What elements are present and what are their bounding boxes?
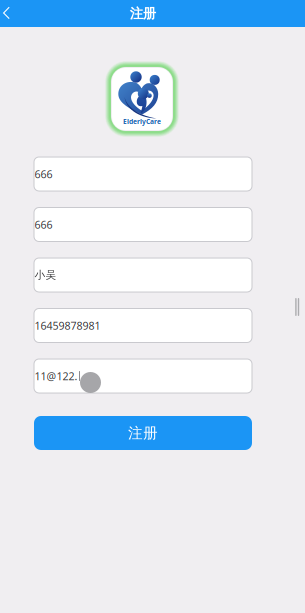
button[interactable]: 11@122. bbox=[34, 359, 252, 393]
staticText: 666 bbox=[34, 217, 52, 232]
staticText: 注册 bbox=[130, 5, 156, 22]
staticText: 小吴 bbox=[34, 268, 56, 281]
button[interactable]: 小吴 bbox=[34, 258, 252, 292]
button[interactable]: Back bbox=[0, 0, 22, 27]
button[interactable]: 666 bbox=[34, 157, 252, 191]
button[interactable]: 注册 bbox=[34, 416, 252, 450]
staticText: 注册 bbox=[128, 424, 158, 442]
staticText: 666 bbox=[34, 167, 52, 181]
staticText: 11@122. bbox=[34, 369, 77, 383]
button[interactable]: 666 bbox=[34, 207, 252, 241]
staticText: ElderlyCare bbox=[123, 117, 161, 126]
button[interactable]: 16459878981 bbox=[34, 308, 252, 342]
staticText: 16459878981 bbox=[34, 318, 100, 333]
